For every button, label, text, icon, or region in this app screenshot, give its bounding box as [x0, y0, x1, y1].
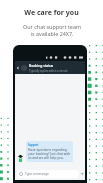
- button[interactable]: Send: [80, 172, 84, 176]
- staticText: Typically replies within a minute: [29, 69, 68, 73]
- staticText: Have questions regarding your booking? J…: [28, 148, 71, 160]
- other: Back: [16, 66, 20, 70]
- staticText: Booking status: [29, 63, 54, 68]
- staticText: Our chat support team is available 24X7.: [23, 23, 81, 38]
- button[interactable]: Support: [18, 141, 84, 162]
- button[interactable]: Type a message: [19, 170, 77, 178]
- staticText: Support: [28, 143, 39, 147]
- staticText: We care for you: [24, 8, 79, 18]
- button[interactable]: Back: [16, 61, 83, 74]
- staticText: Type a message: [25, 172, 49, 176]
